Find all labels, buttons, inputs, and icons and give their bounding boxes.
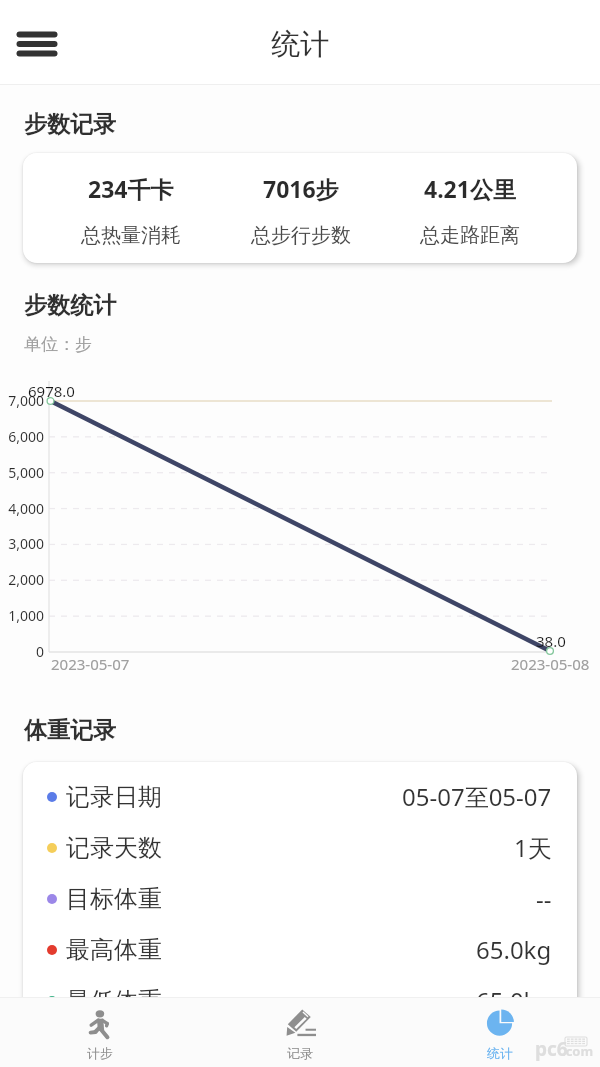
button[interactable]: 统计: [400, 997, 600, 1067]
staticText: 计步: [87, 1045, 113, 1061]
staticText: pc6: [535, 1036, 568, 1062]
staticText: 0: [2, 642, 44, 661]
staticText: 2,000: [2, 570, 44, 589]
staticText: 步数统计: [24, 291, 116, 320]
staticText: 最低体重: [66, 986, 162, 1016]
button[interactable]: 记录日期: [23, 771, 577, 822]
staticText: 6,000: [2, 427, 44, 446]
staticText: 1,000: [2, 606, 44, 625]
staticText: 记录日期: [66, 782, 162, 812]
staticText: 2023-05-07: [51, 654, 130, 674]
staticText: 总热量消耗: [81, 223, 181, 248]
staticText: 步数记录: [24, 110, 116, 139]
staticText: 1天: [514, 831, 552, 864]
staticText: 体重记录: [24, 716, 116, 745]
staticText: 记录: [287, 1045, 313, 1061]
staticText: 目标体重: [66, 884, 162, 914]
button[interactable]: 计步: [0, 997, 200, 1067]
button[interactable]: 记录天数: [23, 822, 577, 873]
button[interactable]: 234千卡: [23, 153, 577, 263]
staticText: 234千卡: [88, 173, 174, 204]
staticText: 单位：步: [24, 334, 92, 355]
staticText: 2023-05-08: [511, 654, 590, 674]
staticText: 最高体重: [66, 935, 162, 965]
button[interactable]: 最低体重: [23, 975, 577, 1026]
staticText: 3,000: [2, 534, 44, 553]
staticText: .com: [562, 1042, 594, 1060]
staticText: --: [536, 882, 552, 915]
staticText: 65.0kg: [476, 984, 552, 1017]
button[interactable]: 记录: [200, 997, 400, 1067]
staticText: 38.0: [536, 631, 566, 651]
staticText: 记录天数: [66, 833, 162, 863]
staticText: 7016步: [263, 173, 339, 204]
button[interactable]: 目标体重: [23, 873, 577, 924]
staticText: 6978.0: [28, 381, 75, 401]
staticText: 7,000: [2, 391, 44, 410]
staticText: 4,000: [2, 499, 44, 518]
button[interactable]: Menu: [9, 16, 65, 72]
staticText: 4.21公里: [424, 173, 516, 204]
staticText: 统计: [271, 26, 329, 63]
button[interactable]: 最高体重: [23, 924, 577, 975]
staticText: 总走路距离: [420, 223, 520, 248]
staticText: 05-07至05-07: [402, 780, 552, 813]
staticText: 统计: [487, 1045, 513, 1061]
staticText: 65.0kg: [476, 933, 552, 966]
staticText: 总步行步数: [251, 223, 351, 248]
staticText: 5,000: [2, 463, 44, 482]
